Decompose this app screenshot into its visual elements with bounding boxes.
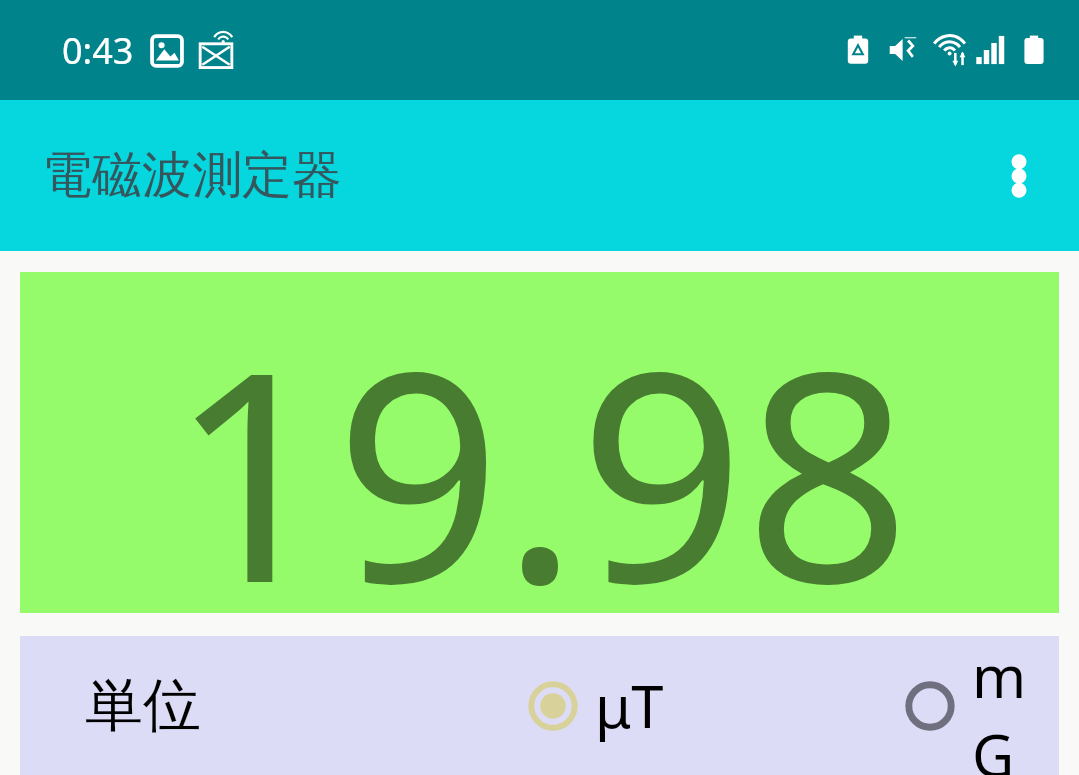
staticText: μT xyxy=(595,666,664,745)
button[interactable]: mG xyxy=(898,636,1059,775)
button[interactable]: More options xyxy=(983,140,1055,212)
staticText: 19.98 xyxy=(169,272,911,613)
button[interactable]: μT xyxy=(521,666,668,745)
staticText: mG xyxy=(972,636,1055,775)
staticText: 0:43 xyxy=(62,26,134,75)
staticText: 電磁波測定器 xyxy=(42,144,342,207)
staticText: 単位 xyxy=(85,669,201,742)
button[interactable]: 19.98 xyxy=(20,272,1059,613)
